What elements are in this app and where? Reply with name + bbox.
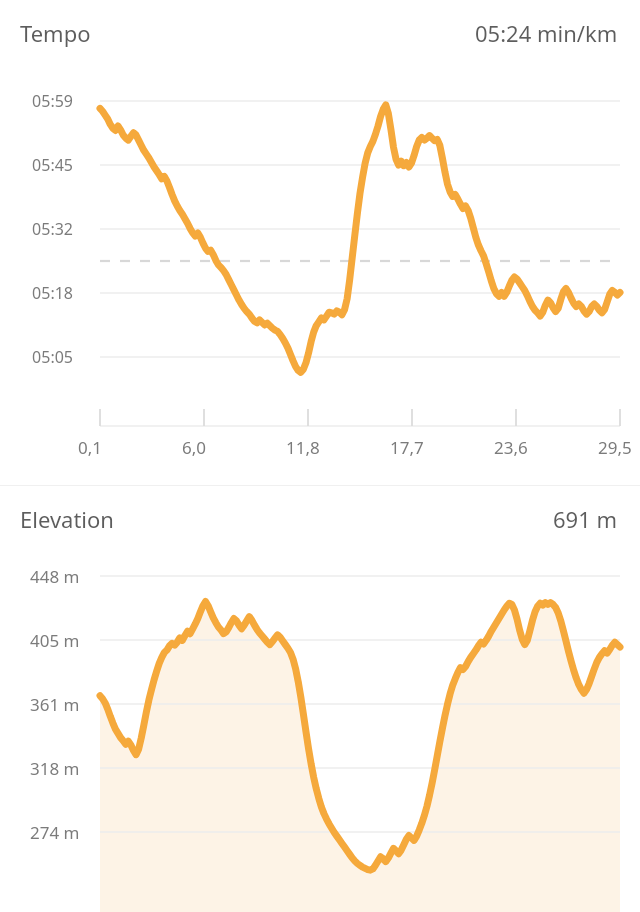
staticText: 691 m bbox=[553, 504, 618, 534]
staticText: 05:24 min/km bbox=[475, 18, 618, 48]
staticText: 448 m bbox=[30, 565, 80, 588]
staticText: Elevation bbox=[20, 504, 114, 534]
staticText: 11,8 bbox=[286, 436, 320, 459]
staticText: 17,7 bbox=[390, 436, 424, 459]
staticText: 05:45 bbox=[32, 154, 73, 176]
staticText: 405 m bbox=[30, 629, 80, 652]
staticText: 318 m bbox=[30, 757, 80, 780]
staticText: Tempo bbox=[20, 18, 91, 48]
staticText: 361 m bbox=[30, 693, 80, 716]
staticText: 05:59 bbox=[32, 90, 73, 112]
staticText: 05:32 bbox=[32, 218, 73, 240]
button[interactable]: Elevation bbox=[0, 486, 640, 552]
staticText: 274 m bbox=[30, 821, 80, 844]
staticText: 05:18 bbox=[32, 282, 73, 304]
staticText: 23,6 bbox=[494, 436, 528, 459]
staticText: 29,5 bbox=[598, 436, 632, 459]
staticText: 05:05 bbox=[32, 346, 73, 368]
staticText: 0,1 bbox=[78, 436, 103, 459]
button[interactable]: Tempo bbox=[0, 0, 640, 66]
staticText: 6,0 bbox=[182, 436, 207, 459]
